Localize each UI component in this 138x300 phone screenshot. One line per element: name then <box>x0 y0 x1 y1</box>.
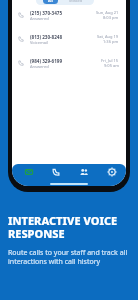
staticText: Sun, Aug 21 <box>96 10 119 15</box>
staticText: All <box>48 0 53 3</box>
staticText: Missed <box>69 0 83 3</box>
button[interactable]: (984) 329-6199 <box>12 51 126 75</box>
staticText: INTERACTIVE VOICE RESPONSE <box>8 213 118 241</box>
button[interactable]: Calls <box>42 166 70 178</box>
staticText: 9:05 am <box>104 63 119 68</box>
button[interactable]: Missed <box>65 0 87 4</box>
staticText: Voicemail <box>30 40 48 45</box>
staticText: Sat, Aug 19 <box>97 34 119 39</box>
staticText: Fri, Jul 15 <box>101 58 119 63</box>
staticText: Route calls to your staff and track all … <box>8 248 130 266</box>
staticText: (984) 329-6199 <box>30 58 63 64</box>
staticText: Answered <box>30 64 49 69</box>
button[interactable]: Messages <box>15 166 42 178</box>
button[interactable]: Settings <box>98 166 126 178</box>
button[interactable]: (215) 370-3475 <box>12 3 126 27</box>
staticText: 8:03 pm <box>103 15 119 20</box>
staticText: 1:36 pm <box>103 39 119 44</box>
staticText: Answered <box>30 16 49 21</box>
button[interactable]: (813) 230-8248 <box>12 27 126 51</box>
button[interactable]: All <box>43 0 58 4</box>
staticText: (215) 370-3475 <box>30 10 63 16</box>
staticText: (813) 230-8248 <box>30 34 63 40</box>
button[interactable]: Contacts <box>70 166 98 178</box>
